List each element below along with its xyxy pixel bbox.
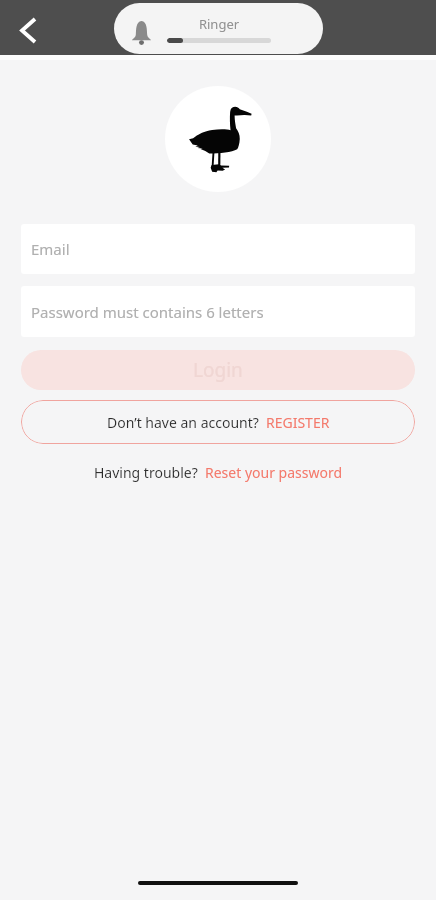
button[interactable]: Email bbox=[21, 224, 415, 274]
staticText: Email bbox=[31, 239, 70, 259]
staticText: Password must contains 6 letters bbox=[31, 302, 264, 322]
staticText: Reset your password bbox=[205, 463, 343, 482]
staticText: Ringer bbox=[164, 15, 274, 33]
button[interactable]: Don’t have an account? bbox=[21, 400, 415, 444]
staticText: REGISTER bbox=[266, 413, 330, 432]
button[interactable]: Ringer bbox=[114, 3, 323, 54]
staticText: Don’t have an account? bbox=[107, 413, 259, 432]
staticText: Having trouble? bbox=[94, 463, 198, 482]
button[interactable]: Password must contains 6 letters bbox=[21, 286, 415, 337]
staticText: Login bbox=[193, 357, 243, 383]
button[interactable]: Login bbox=[21, 350, 415, 390]
button[interactable]: Back bbox=[6, 5, 50, 49]
button[interactable]: Reset your password bbox=[205, 463, 343, 482]
